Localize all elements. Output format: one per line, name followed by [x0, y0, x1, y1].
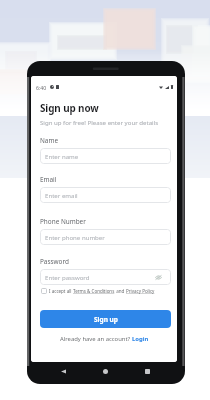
button[interactable]: Home — [98, 365, 112, 377]
staticText: Phone Number — [40, 217, 86, 226]
staticText: and — [115, 288, 126, 294]
button[interactable]: Enter phone number — [40, 229, 171, 245]
button[interactable]: Sign up — [40, 310, 171, 328]
staticText: Login — [132, 335, 149, 343]
button[interactable]: Enter email — [40, 187, 171, 203]
staticText: 6:40 — [36, 84, 47, 90]
staticText: Terms & Conditions — [73, 288, 115, 294]
staticText: Already have an account? — [60, 335, 132, 343]
staticText: Enter name — [45, 152, 79, 160]
staticText: Sign up — [94, 315, 118, 324]
button[interactable]: Back — [56, 365, 70, 377]
button[interactable]: Enter name — [40, 148, 171, 164]
staticText: Enter password — [45, 273, 90, 281]
staticText: Privacy Policy — [126, 288, 155, 294]
staticText: Sign up now — [40, 101, 99, 114]
staticText: Sign up for free! Please enter your deta… — [40, 118, 159, 126]
staticText: Enter phone number — [45, 233, 105, 241]
staticText: I accept all — [49, 288, 73, 294]
staticText: Email — [40, 175, 57, 184]
button[interactable]: I accept all — [41, 288, 155, 294]
staticText: Name — [40, 136, 59, 145]
button[interactable]: Enter password — [40, 269, 171, 285]
button[interactable]: Recents — [140, 365, 154, 377]
staticText: Password — [40, 257, 69, 266]
staticText: Enter email — [45, 191, 78, 199]
button[interactable]: Login — [132, 335, 149, 343]
